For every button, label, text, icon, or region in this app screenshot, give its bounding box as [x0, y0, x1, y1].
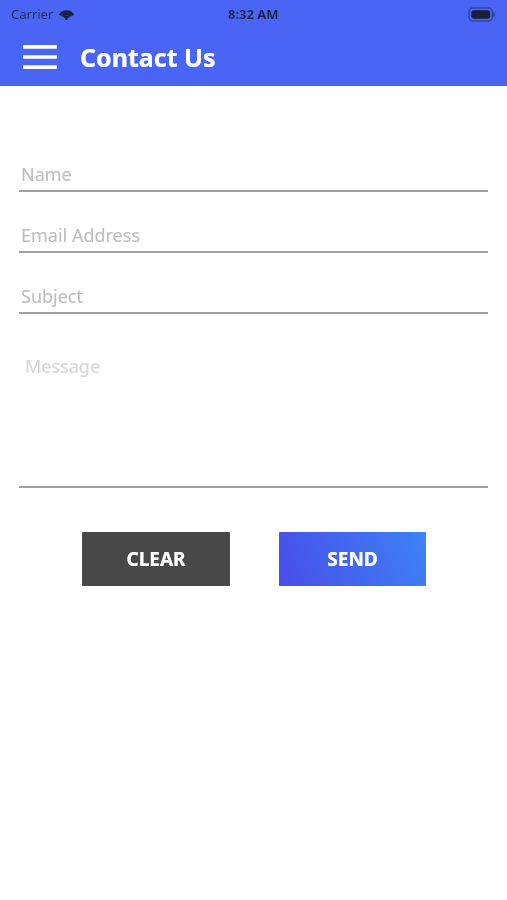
staticText: Email Address [21, 223, 141, 248]
button[interactable]: Message [19, 344, 488, 488]
button[interactable]: SEND [279, 532, 426, 586]
staticText: Name [21, 162, 72, 187]
staticText: Contact Us [80, 40, 216, 74]
button[interactable]: Name [19, 162, 488, 192]
staticText: Subject [21, 284, 84, 309]
staticText: Carrier [11, 5, 54, 23]
button[interactable]: Email Address [19, 223, 488, 253]
staticText: Message [25, 354, 101, 379]
staticText: SEND [327, 546, 378, 572]
button[interactable]: Subject [19, 284, 488, 314]
staticText: 8:32 AM [228, 5, 279, 23]
button[interactable]: Open navigation menu [14, 31, 66, 83]
staticText: CLEAR [126, 546, 186, 572]
button[interactable]: CLEAR [82, 532, 230, 586]
